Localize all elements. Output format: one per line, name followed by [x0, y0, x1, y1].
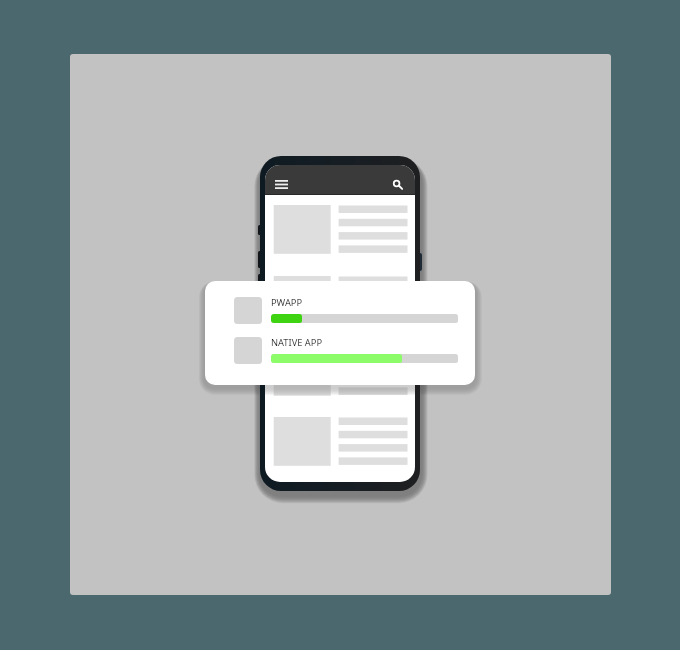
staticText: PWAPP [271, 296, 303, 309]
button[interactable]: NATIVE APP [234, 337, 449, 364]
button[interactable]: PWAPP [234, 297, 449, 324]
staticText: NATIVE APP [271, 336, 323, 349]
button[interactable]: Search [388, 175, 406, 193]
button[interactable]: Menu [271, 176, 291, 193]
